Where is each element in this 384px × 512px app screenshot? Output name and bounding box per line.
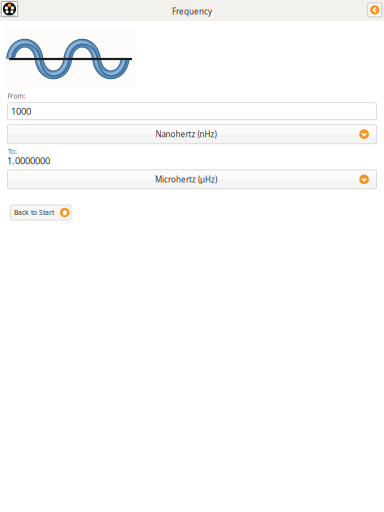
staticText: Microhertz (µHz): [155, 174, 217, 185]
button[interactable]: 1000: [7, 103, 376, 120]
staticText: 1.0000000: [7, 154, 50, 167]
button[interactable]: Back: [368, 3, 382, 17]
button[interactable]: Back to Start: [10, 205, 71, 220]
staticText: Nanohertz (nHz): [155, 129, 216, 139]
staticText: Frequency: [172, 6, 212, 17]
button[interactable]: Nanohertz (nHz): [7, 125, 376, 144]
staticText: 1000: [11, 105, 31, 117]
staticText: From:: [8, 91, 26, 100]
button[interactable]: Microhertz (µHz): [7, 170, 376, 189]
button[interactable]: Home: [1, 1, 18, 17]
staticText: Back to Start: [14, 208, 54, 217]
staticText: To:: [8, 147, 17, 156]
